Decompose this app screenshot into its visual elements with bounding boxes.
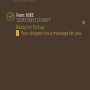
staticText: From: NIKE xyxy=(16,12,34,18)
other: Open shipment details xyxy=(79,18,88,27)
other: Ready for pickup xyxy=(6,12,15,21)
staticText: Your shipper has a message for you. xyxy=(21,30,83,36)
button[interactable]: Your shipper has a message for you. xyxy=(0,29,90,38)
button[interactable]: Ready for pickup xyxy=(0,10,90,36)
staticText: 12583199512196977 xyxy=(16,17,51,23)
staticText: Ready for Pickup xyxy=(16,24,45,30)
